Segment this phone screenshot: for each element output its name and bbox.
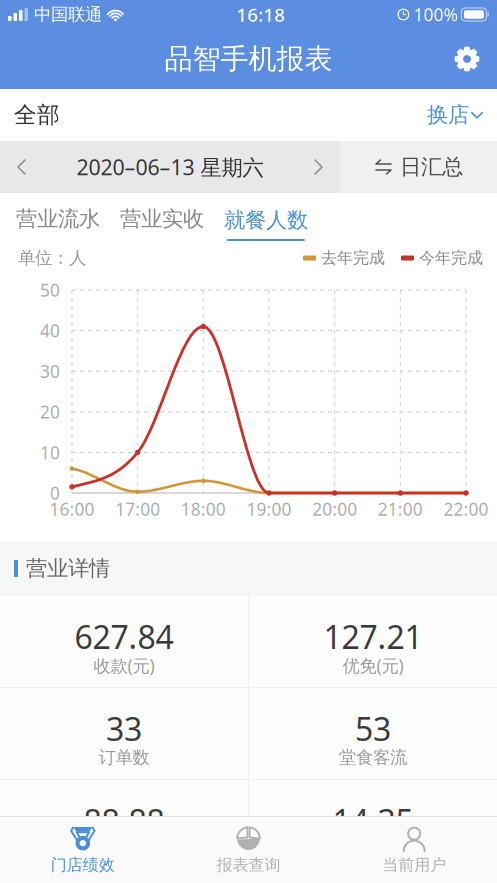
- staticText: 16:00: [49, 497, 94, 520]
- staticText: 17:00: [115, 497, 160, 520]
- staticText: 营业实收: [120, 206, 204, 232]
- staticText: 全部: [14, 101, 60, 129]
- staticText: 门店绩效: [51, 855, 115, 875]
- staticText: 20: [40, 400, 60, 423]
- staticText: 订单数: [98, 747, 149, 768]
- staticText: 50: [40, 278, 60, 301]
- staticText: 日汇总: [400, 154, 463, 180]
- staticText: 0: [50, 481, 60, 504]
- staticText: 客单价: [98, 839, 149, 860]
- staticText: 127.21: [323, 615, 422, 658]
- staticText: 33: [106, 707, 142, 750]
- staticText: 报表查询: [216, 855, 280, 875]
- staticText: 优免(元): [342, 654, 403, 677]
- staticText: 收款(元): [93, 654, 154, 677]
- staticText: 今年完成: [419, 248, 483, 268]
- staticText: 换店: [427, 102, 469, 128]
- staticText: 单位：人: [18, 247, 86, 269]
- staticText: 53: [355, 707, 391, 750]
- button[interactable]: 报表查询: [166, 817, 331, 883]
- staticText: 当前用户: [382, 855, 446, 875]
- staticText: 88.88: [83, 799, 164, 842]
- staticText: 40: [40, 319, 60, 342]
- staticText: 18:00: [181, 497, 226, 520]
- staticText: 14.35: [332, 799, 413, 842]
- staticText: 21:00: [378, 497, 423, 520]
- staticText: 627.84: [74, 615, 173, 658]
- button[interactable]: 营业流水: [6, 197, 110, 241]
- staticText: 翻台率: [347, 839, 398, 860]
- staticText: 10: [40, 441, 60, 464]
- staticText: 20:00: [312, 497, 357, 520]
- staticText: 19:00: [246, 497, 291, 520]
- button[interactable]: 营业实收: [110, 197, 214, 241]
- staticText: 营业流水: [16, 206, 100, 232]
- staticText: 100%: [413, 3, 457, 26]
- button[interactable]: 2020–06–13 星期六: [0, 141, 340, 193]
- staticText: 去年完成: [321, 248, 385, 268]
- button[interactable]: 日汇总: [340, 141, 497, 193]
- staticText: 营业详情: [26, 555, 110, 582]
- button[interactable]: 就餐人数: [214, 197, 318, 241]
- staticText: 30: [40, 360, 60, 383]
- button[interactable]: 门店绩效: [0, 817, 166, 883]
- staticText: 22:00: [443, 497, 488, 520]
- staticText: 堂食客流: [339, 747, 407, 768]
- button[interactable]: 当前用户: [331, 817, 497, 883]
- staticText: 16:18: [236, 2, 285, 27]
- staticText: 就餐人数: [224, 207, 308, 233]
- staticText: 中国联通: [34, 4, 102, 25]
- button[interactable]: 设置: [445, 37, 489, 81]
- staticText: 品智手机报表: [164, 42, 332, 76]
- button[interactable]: 全部: [0, 89, 497, 141]
- staticText: 2020–06–13 星期六: [76, 153, 263, 181]
